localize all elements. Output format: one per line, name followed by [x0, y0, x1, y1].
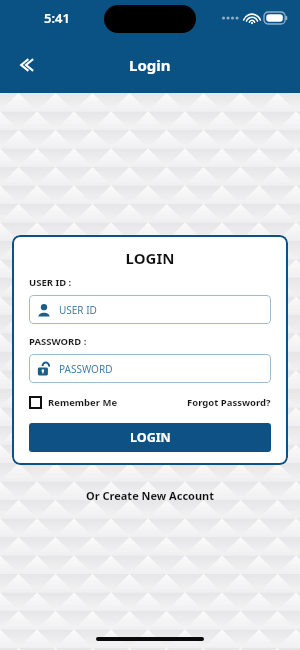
staticText: PASSWORD :	[29, 335, 87, 348]
button[interactable]: Back	[6, 45, 46, 85]
button[interactable]: Or Create New Account	[0, 488, 300, 503]
staticText: 5:41	[44, 9, 70, 27]
button[interactable]: Remember Me	[29, 394, 118, 411]
staticText: USER ID :	[29, 276, 72, 289]
button[interactable]: LOGIN	[29, 423, 271, 452]
button[interactable]: USER ID	[29, 295, 271, 324]
button[interactable]: PASSWORD	[29, 354, 271, 383]
staticText: Remember Me	[48, 396, 118, 409]
staticText: LOGIN	[29, 248, 271, 268]
staticText: Login	[129, 55, 171, 75]
staticText: PASSWORD	[59, 362, 113, 376]
button[interactable]: Forgot Password?	[187, 394, 271, 411]
staticText: USER ID	[59, 303, 97, 317]
staticText: LOGIN	[130, 429, 171, 446]
